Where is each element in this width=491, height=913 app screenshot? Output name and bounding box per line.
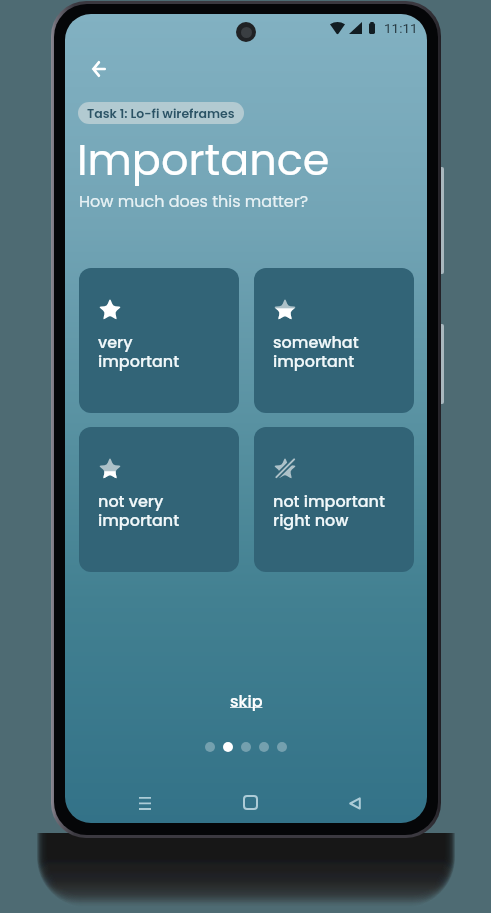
button[interactable]: Task 1: Lo-fi wireframes xyxy=(78,102,244,124)
button[interactable]: somewhat important xyxy=(254,268,414,413)
button[interactable]: Recent apps xyxy=(123,781,167,823)
button[interactable]: not very important xyxy=(79,427,239,572)
staticText: not very important xyxy=(98,490,180,532)
staticText: very important xyxy=(98,331,180,373)
staticText: skip xyxy=(230,690,263,712)
button[interactable]: very important xyxy=(79,268,239,413)
button[interactable]: Home xyxy=(228,780,272,823)
staticText: not important right now xyxy=(273,490,385,532)
button[interactable]: Back xyxy=(333,781,377,823)
staticText: somewhat important xyxy=(273,331,359,373)
button[interactable]: not important right now xyxy=(254,427,414,572)
staticText: Task 1: Lo-fi wireframes xyxy=(87,105,235,122)
button[interactable]: skip xyxy=(220,686,273,716)
staticText: Importance xyxy=(77,130,330,190)
button[interactable]: Back xyxy=(77,47,121,91)
staticText: How much does this matter? xyxy=(79,190,309,212)
staticText: 11:11 xyxy=(384,20,418,36)
